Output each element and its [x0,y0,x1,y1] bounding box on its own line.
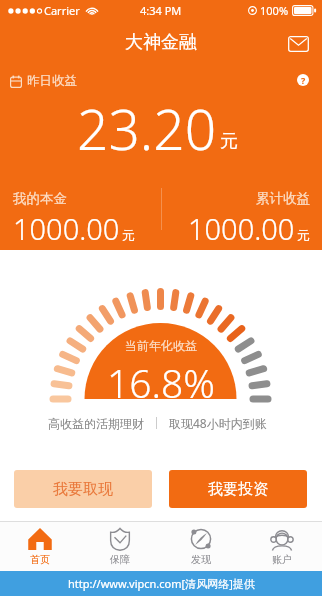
staticText: ? [301,74,306,86]
staticText: 元 [122,227,135,243]
staticText: 取现48小时内到账 [169,415,267,431]
staticText: 昨日收益 [27,73,77,89]
button[interactable]: 我要取现 [14,470,152,508]
staticText: 当前年化收益 [125,338,197,353]
staticText: 4:34 PM [140,3,182,18]
staticText: http://www.vipcn.com[清风网络]提供 [68,576,255,591]
staticText: 1000.00 [188,209,295,248]
button[interactable]: 首页 [0,522,80,571]
staticText: 发现 [191,553,211,566]
staticText: 保障 [110,553,130,566]
staticText: 累计收益 [256,190,310,207]
button[interactable]: 账户 [241,522,322,571]
button[interactable]: 我要投资 [169,470,307,508]
staticText: 高收益的活期理财 [48,416,144,431]
button[interactable]: Help [293,70,313,90]
staticText: 1000.00 [13,209,120,248]
button[interactable]: 发现 [160,522,241,571]
staticText: 100% [260,3,289,18]
staticText: 我要投资 [208,480,268,499]
staticText: Carrier [44,3,80,18]
staticText: 元 [297,227,310,243]
button[interactable]: Messages [282,28,314,60]
staticText: 大神金融 [125,31,197,54]
staticText: 16.8% [107,356,215,409]
staticText: 23.20 [77,91,217,166]
staticText: 我的本金 [13,190,67,207]
staticText: 我要取现 [53,480,113,499]
staticText: 首页 [30,553,50,566]
staticText: 元 [220,130,238,153]
staticText: 账户 [272,553,292,566]
button[interactable]: 保障 [80,522,160,571]
